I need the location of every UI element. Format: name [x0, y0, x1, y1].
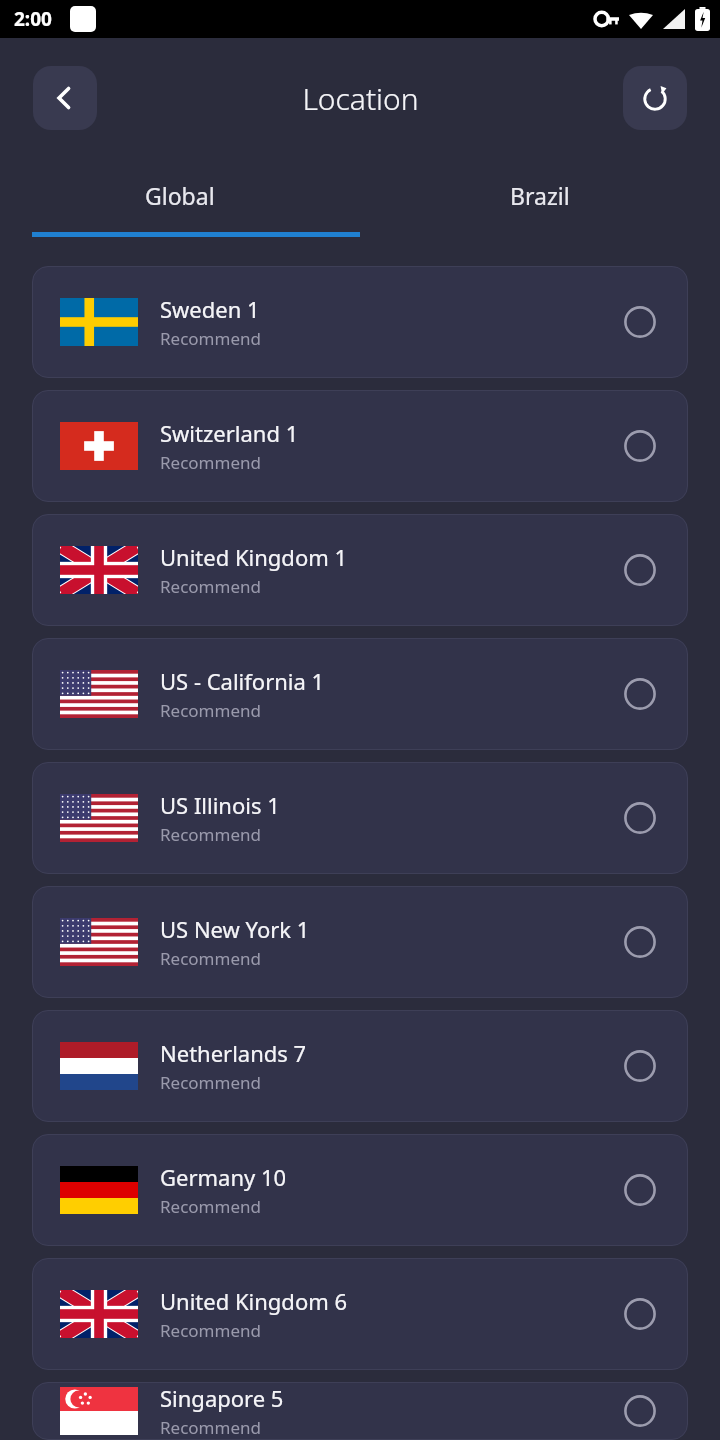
staticText: Recommend [160, 1195, 261, 1218]
staticText: Brazil [510, 180, 570, 211]
staticText: Global [145, 180, 215, 211]
staticText: Recommend [160, 1071, 261, 1094]
staticText: US - California 1 [160, 666, 325, 696]
button[interactable]: US - California 1 [32, 638, 688, 750]
button[interactable]: Select Germany 10 [620, 1170, 660, 1210]
staticText: United Kingdom 6 [160, 1286, 348, 1316]
button[interactable]: Germany 10 [32, 1134, 688, 1246]
button[interactable]: United Kingdom 1 [32, 514, 688, 626]
staticText: United Kingdom 1 [160, 542, 348, 572]
button[interactable]: Select Singapore 5 [620, 1391, 660, 1431]
button[interactable]: Select US New York 1 [620, 922, 660, 962]
staticText: Recommend [160, 699, 261, 722]
button[interactable]: Select United Kingdom 6 [620, 1294, 660, 1334]
staticText: Germany 10 [160, 1162, 287, 1192]
button[interactable]: Switzerland 1 [32, 390, 688, 502]
button[interactable]: Select US - California 1 [620, 674, 660, 714]
button[interactable]: Brazil [360, 158, 720, 232]
button[interactable]: Netherlands 7 [32, 1010, 688, 1122]
button[interactable]: US Illinois 1 [32, 762, 688, 874]
staticText: Recommend [160, 1416, 261, 1439]
button[interactable]: Select Switzerland 1 [620, 426, 660, 466]
button[interactable]: Sweden 1 [32, 266, 688, 378]
button[interactable]: Singapore 5 [32, 1382, 688, 1440]
button[interactable]: Refresh [623, 66, 687, 130]
staticText: Recommend [160, 451, 261, 474]
button[interactable]: Select Sweden 1 [620, 302, 660, 342]
button[interactable]: US New York 1 [32, 886, 688, 998]
staticText: Location [302, 78, 419, 119]
button[interactable]: Select Netherlands 7 [620, 1046, 660, 1086]
staticText: Netherlands 7 [160, 1038, 307, 1068]
button[interactable]: Back [33, 66, 97, 130]
staticText: US New York 1 [160, 914, 310, 944]
staticText: Recommend [160, 947, 261, 970]
staticText: Sweden 1 [160, 294, 260, 324]
button[interactable]: Select US Illinois 1 [620, 798, 660, 838]
staticText: 2:00 [14, 6, 52, 32]
staticText: US Illinois 1 [160, 790, 280, 820]
staticText: Recommend [160, 327, 261, 350]
staticText: Singapore 5 [160, 1383, 284, 1413]
staticText: Recommend [160, 575, 261, 598]
button[interactable]: United Kingdom 6 [32, 1258, 688, 1370]
staticText: Switzerland 1 [160, 418, 299, 448]
staticText: Recommend [160, 823, 261, 846]
button[interactable]: Global [0, 158, 360, 232]
button[interactable]: Select United Kingdom 1 [620, 550, 660, 590]
staticText: Recommend [160, 1319, 261, 1342]
